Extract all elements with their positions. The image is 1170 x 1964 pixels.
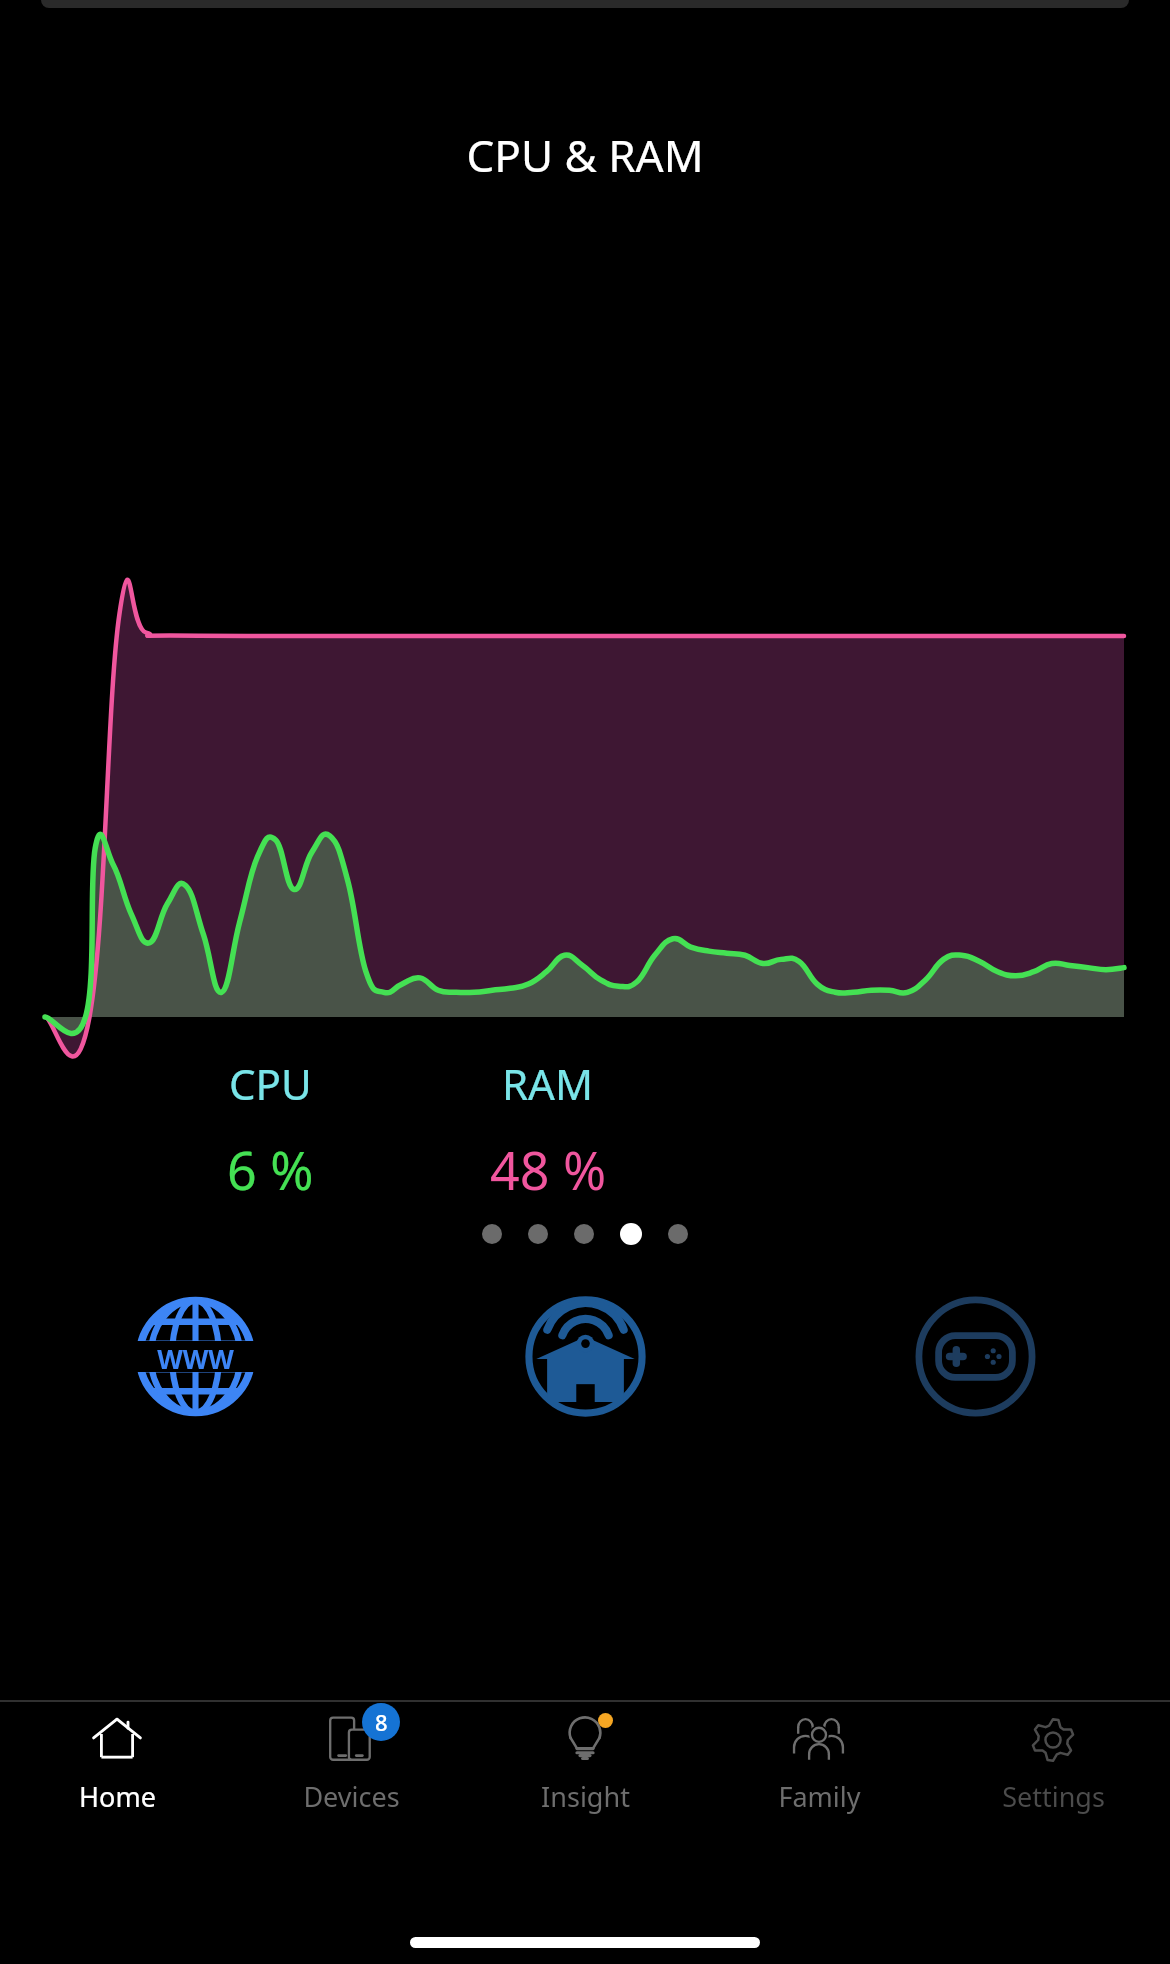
button[interactable] — [620, 1223, 642, 1245]
button[interactable]: Gaming — [914, 1295, 1037, 1418]
button[interactable]: Family — [702, 1702, 936, 1815]
button[interactable]: Smart home — [524, 1295, 647, 1418]
button[interactable] — [482, 1224, 502, 1244]
button[interactable]: Internet — [134, 1295, 257, 1418]
button[interactable]: 8 — [234, 1702, 468, 1815]
button[interactable] — [528, 1224, 548, 1244]
button[interactable]: Home — [0, 1702, 234, 1815]
button[interactable]: RAM — [438, 1055, 658, 1205]
staticText: WWW — [157, 1341, 234, 1372]
staticText: Home — [79, 1778, 156, 1815]
staticText: CPU & RAM — [0, 125, 1170, 185]
staticText: 48 % — [490, 1134, 607, 1205]
staticText: 6 % — [227, 1134, 314, 1205]
staticText: 8 — [375, 1707, 388, 1737]
staticText: Insight — [541, 1778, 630, 1815]
button[interactable] — [668, 1224, 688, 1244]
staticText: Devices — [303, 1778, 400, 1815]
staticText: Settings — [1002, 1778, 1105, 1815]
staticText: CPU — [229, 1055, 312, 1112]
staticText: Family — [778, 1778, 861, 1815]
button[interactable]: Settings — [936, 1702, 1170, 1815]
button[interactable] — [574, 1224, 594, 1244]
staticText: RAM — [502, 1055, 594, 1112]
button[interactable]: CPU — [160, 1055, 380, 1205]
button[interactable]: Insight — [468, 1702, 702, 1815]
